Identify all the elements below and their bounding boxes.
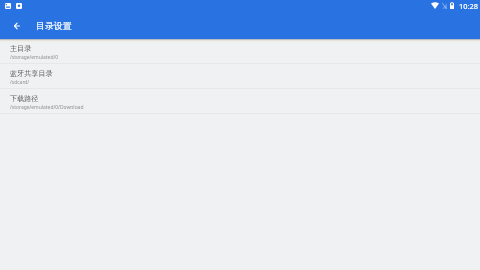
staticText: /storage/emulated/0 [10,54,59,61]
button[interactable]: Back [8,17,25,34]
button[interactable]: 主目录 [0,39,480,64]
staticText: 10:28 [459,1,478,11]
staticText: 蓝牙共享目录 [10,69,53,78]
button[interactable]: 下载路径 [0,89,480,114]
staticText: /sdcard/ [10,79,30,86]
staticText: 主目录 [10,44,32,53]
staticText: 目录设置 [36,20,72,31]
button[interactable]: 蓝牙共享目录 [0,64,480,89]
staticText: 下载路径 [10,94,39,103]
staticText: /storage/emulated/0/Download [10,104,84,111]
